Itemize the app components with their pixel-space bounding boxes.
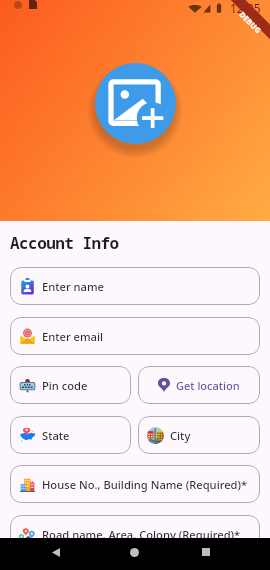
- staticText: Account Info: [10, 232, 119, 254]
- button[interactable]: Enter email: [10, 317, 260, 355]
- button[interactable]: Enter name: [10, 267, 260, 305]
- staticText: City: [170, 428, 191, 443]
- staticText: Road name, Area, Colony (Required)*: [42, 527, 241, 542]
- button[interactable]: State: [10, 416, 131, 454]
- staticText: Get location: [176, 378, 240, 393]
- staticText: Enter email: [42, 329, 104, 344]
- staticText: 12:35: [230, 0, 261, 16]
- button[interactable]: Get location: [138, 366, 260, 404]
- button[interactable]: Pin code: [10, 366, 131, 404]
- button[interactable]: House No., Building Name (Required)*: [10, 465, 260, 503]
- button[interactable]: Add photo: [95, 63, 176, 144]
- staticText: Pin code: [42, 378, 88, 393]
- staticText: House No., Building Name (Required)*: [42, 477, 248, 492]
- button[interactable]: Home: [120, 538, 148, 566]
- staticText: State: [42, 428, 70, 443]
- staticText: DEBUG: [237, 9, 263, 35]
- button[interactable]: City: [138, 416, 260, 454]
- button[interactable]: Road name, Area, Colony (Required)*: [10, 515, 260, 553]
- button[interactable]: Recents: [192, 538, 220, 566]
- button[interactable]: Back: [42, 538, 70, 566]
- staticText: Enter name: [42, 279, 105, 294]
